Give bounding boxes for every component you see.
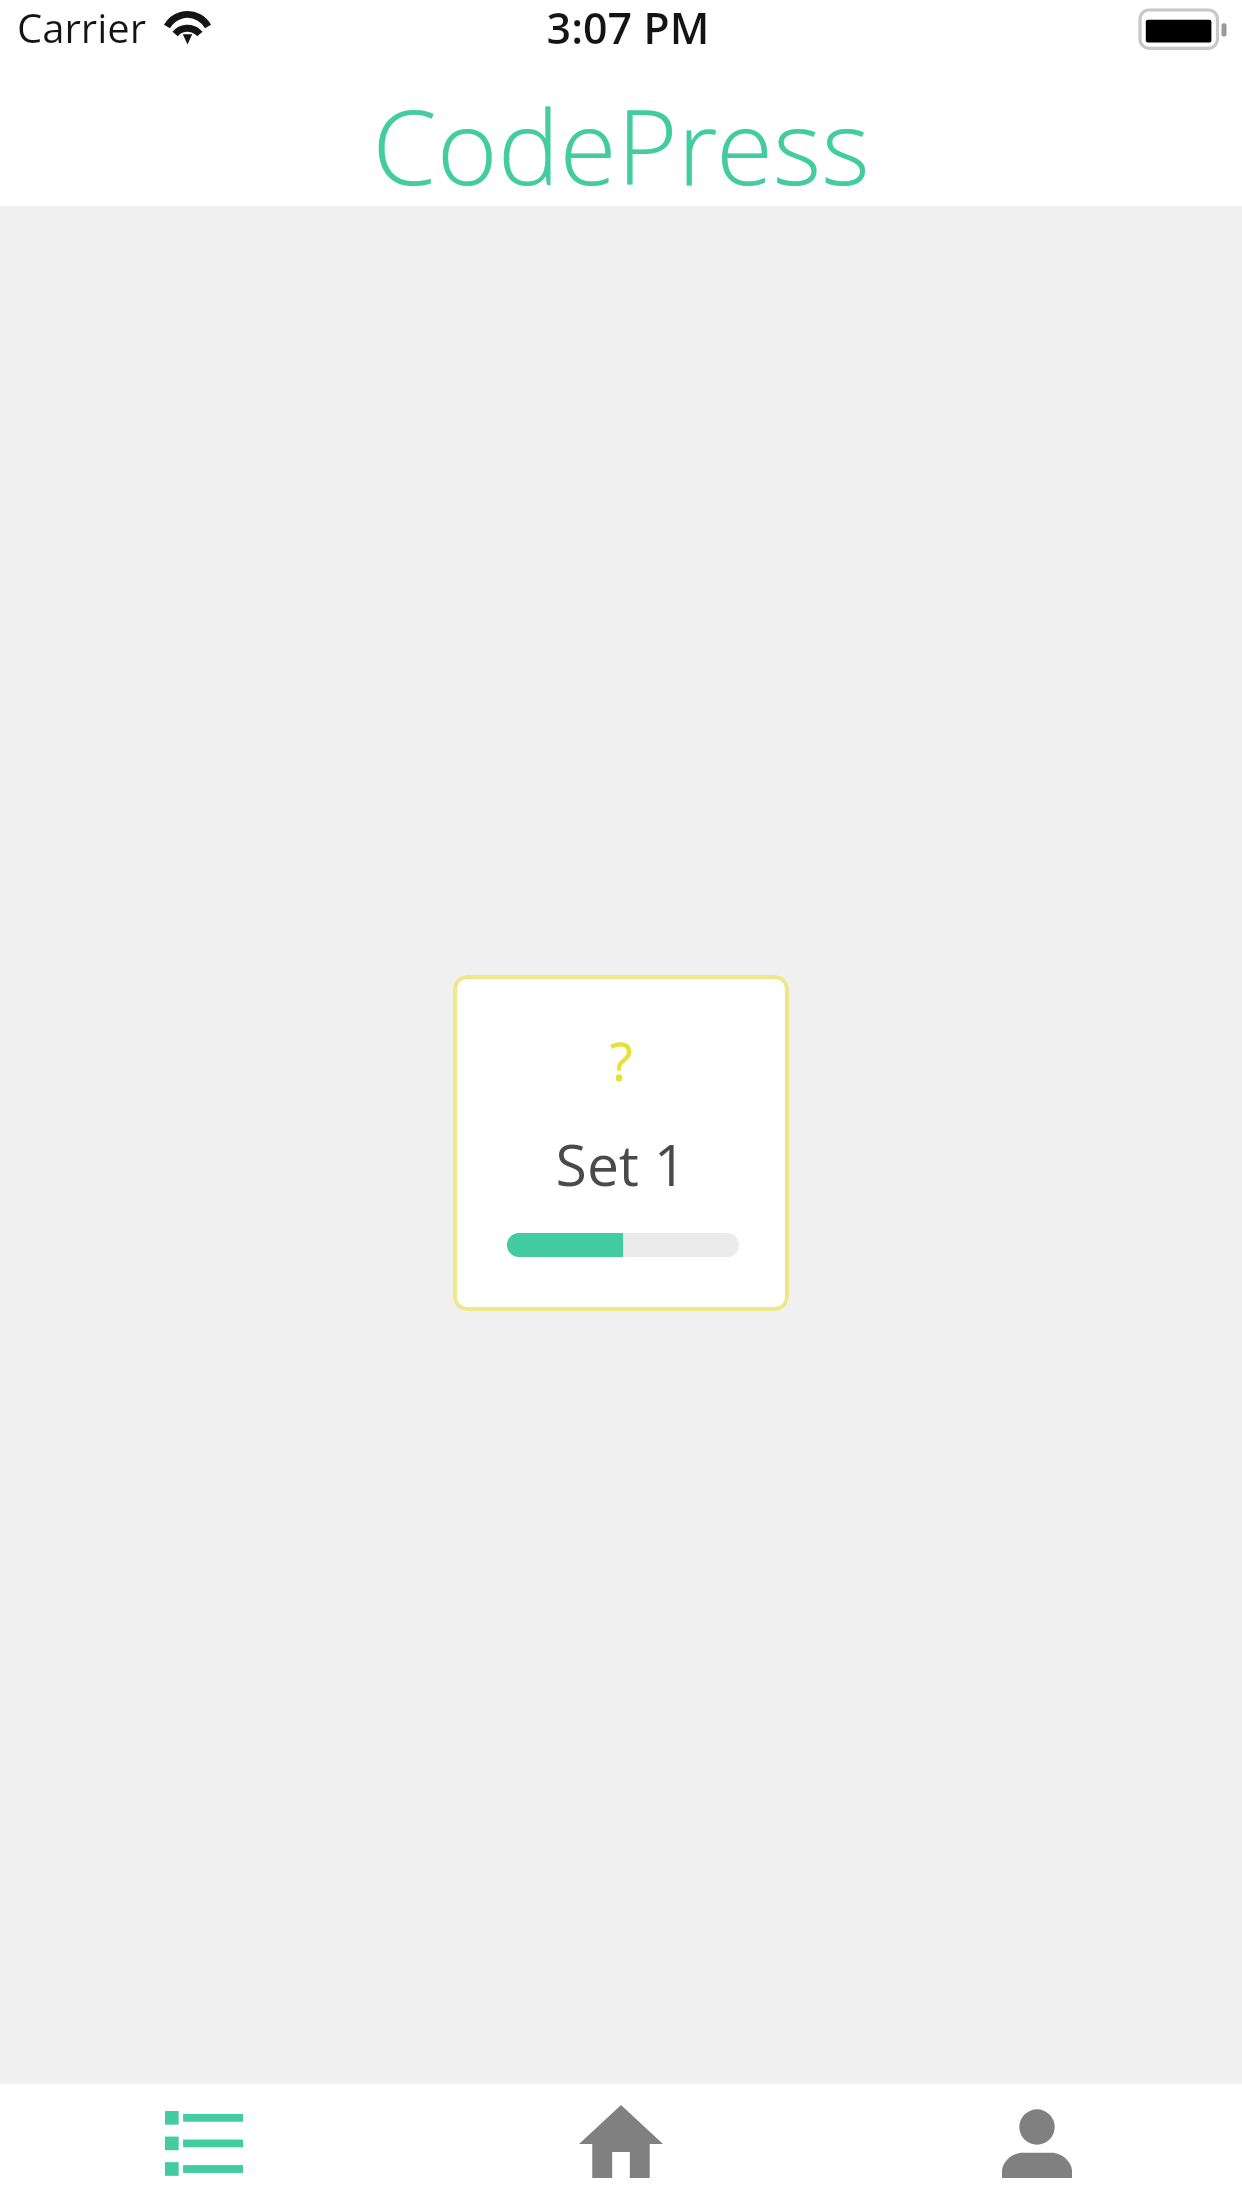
button[interactable]: Profile (828, 2084, 1242, 2208)
staticText: Set 1 (453, 1125, 789, 1203)
staticText: 3:07 PM (7, 0, 1242, 56)
staticText: Carrier (17, 0, 147, 54)
button[interactable]: Home (414, 2084, 828, 2208)
button[interactable]: ? (453, 975, 789, 1311)
staticText: CodePress (0, 74, 1242, 216)
button[interactable]: List (0, 2084, 414, 2208)
staticText: ? (453, 1024, 789, 1096)
